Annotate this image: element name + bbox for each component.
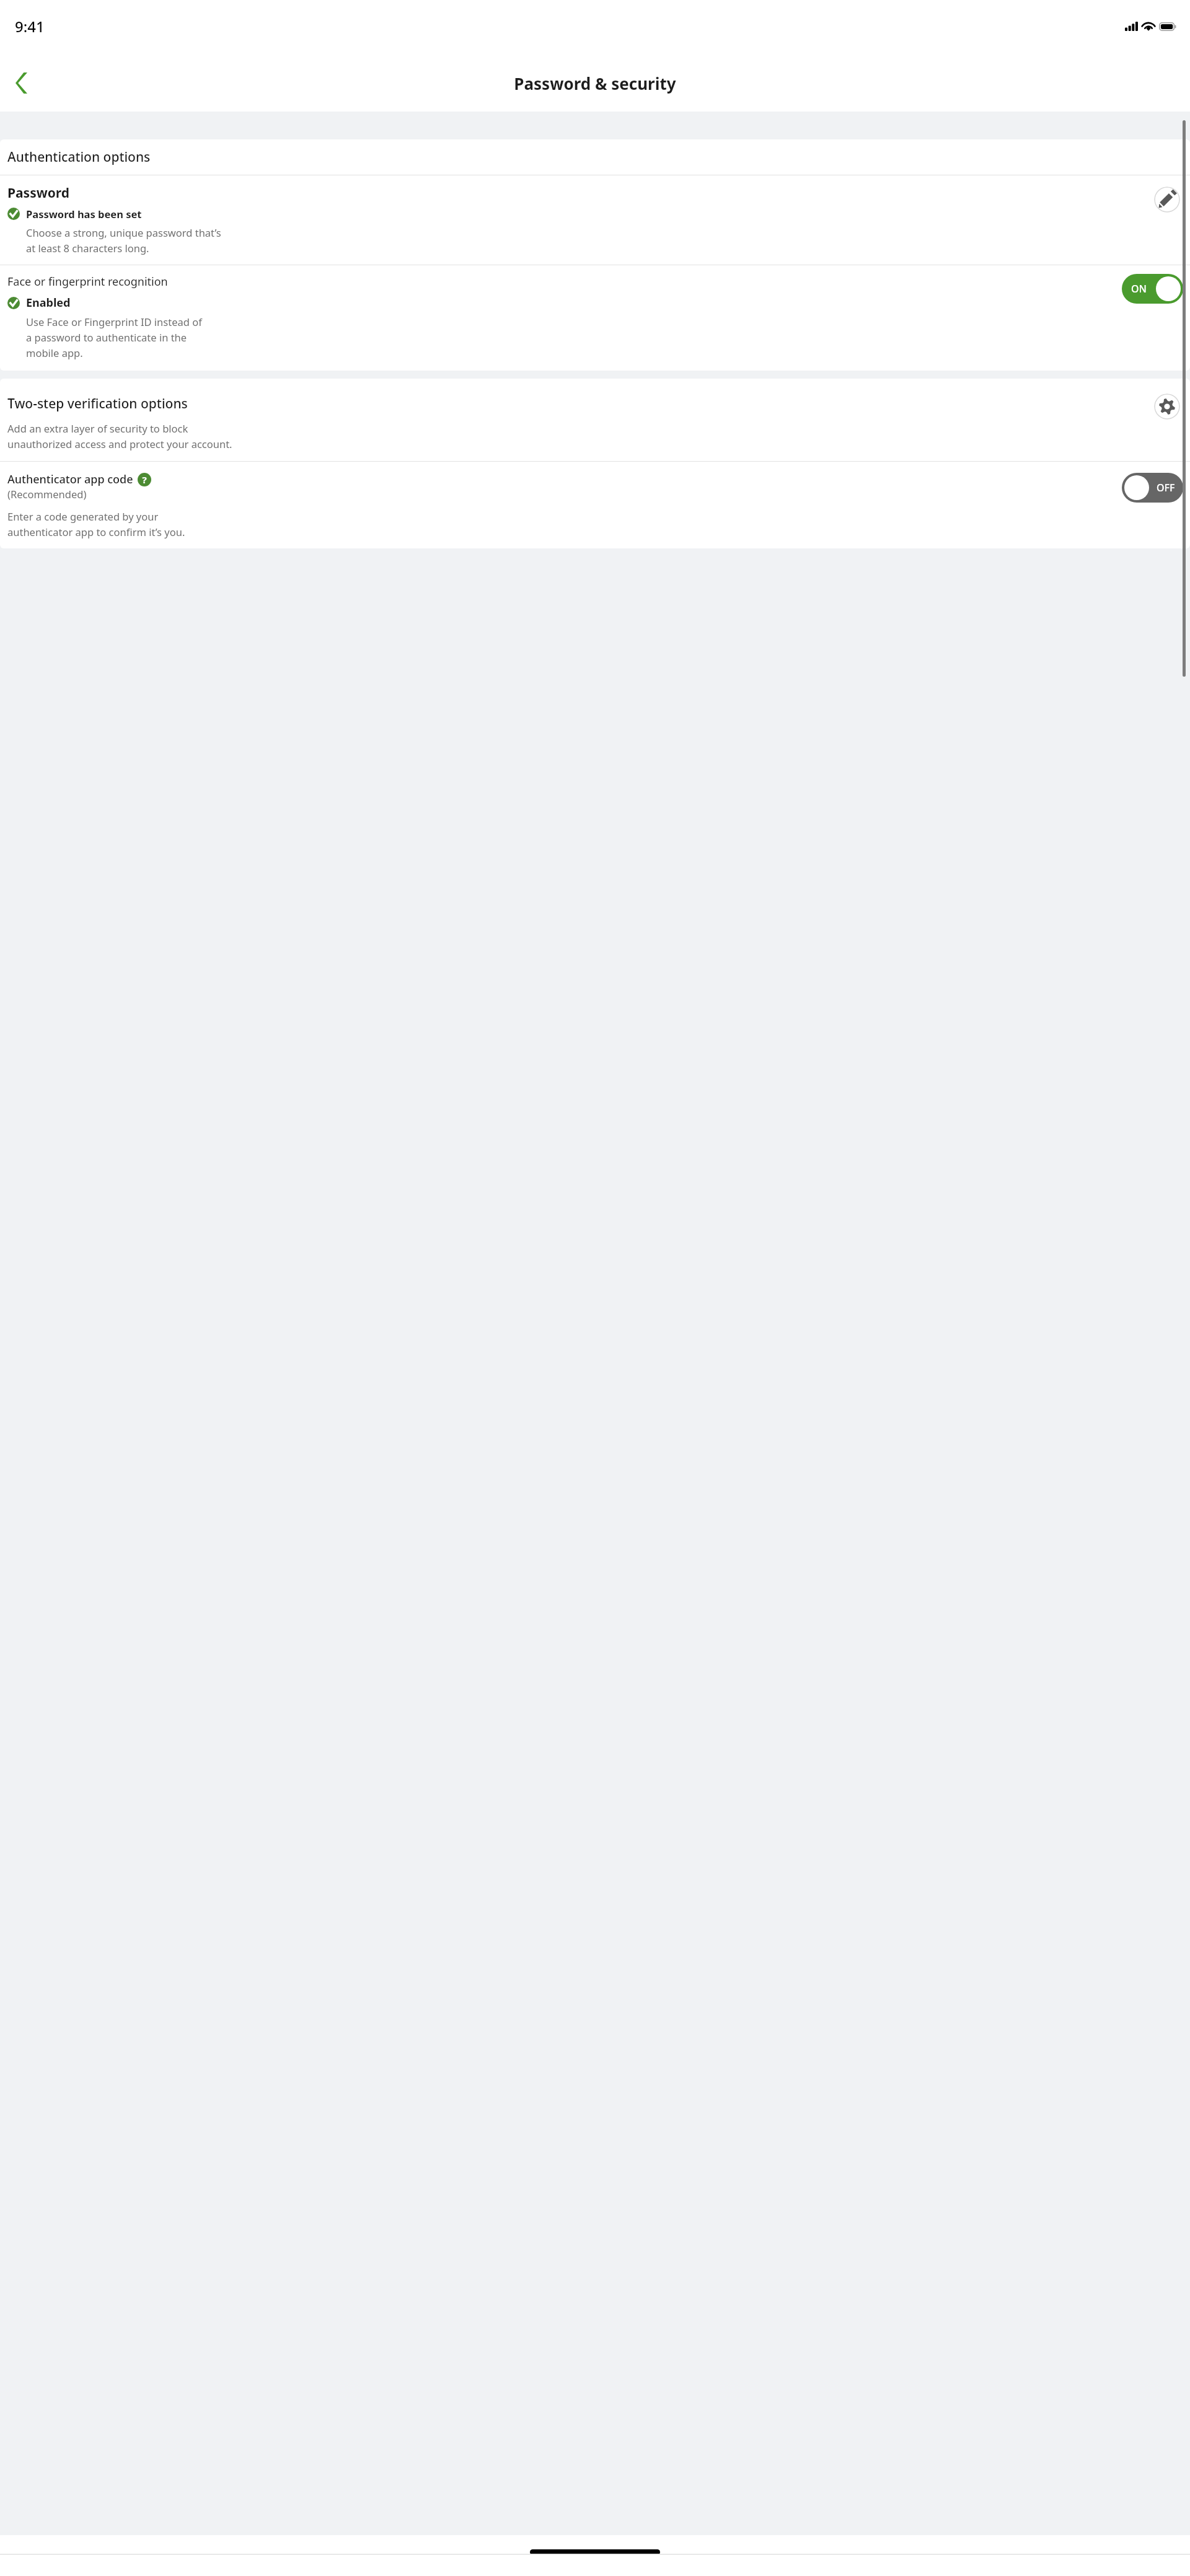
button[interactable]: Authentication options (0, 139, 1190, 175)
staticText: Password has been set (26, 207, 142, 221)
button[interactable]: Face or fingerprint recognition on (1122, 274, 1183, 304)
staticText: Enter a code generated by your authentic… (7, 509, 185, 538)
staticText: Password & security (514, 73, 676, 94)
button[interactable]: Two-step verification options (0, 379, 1190, 461)
button[interactable]: Back (4, 66, 38, 100)
button[interactable]: Face or fingerprint recognition (0, 265, 1190, 371)
staticText: ? (142, 473, 147, 486)
staticText: OFF (1157, 481, 1175, 495)
staticText: 9:41 (15, 16, 45, 37)
staticText: Password (7, 184, 70, 202)
staticText: Add an extra layer of security to block … (7, 421, 232, 451)
button[interactable]: Edit password (1154, 187, 1180, 213)
staticText: Use Face or Fingerprint ID instead of a … (26, 315, 202, 359)
button[interactable]: Authenticator app code off (1122, 473, 1183, 503)
staticText: Enabled (26, 295, 71, 310)
staticText: Choose a strong, unique password that’s … (26, 226, 221, 255)
staticText: Authenticator app code (7, 472, 133, 487)
button[interactable]: Authenticator app code (0, 462, 1190, 548)
staticText: ON (1131, 282, 1147, 296)
staticText: Face or fingerprint recognition (7, 274, 168, 289)
staticText: Authentication options (7, 148, 151, 166)
button[interactable]: Two-step verification settings (1154, 393, 1180, 420)
button[interactable]: Password (0, 175, 1190, 265)
staticText: (Recommended) (7, 487, 87, 501)
staticText: Two-step verification options (7, 395, 188, 413)
